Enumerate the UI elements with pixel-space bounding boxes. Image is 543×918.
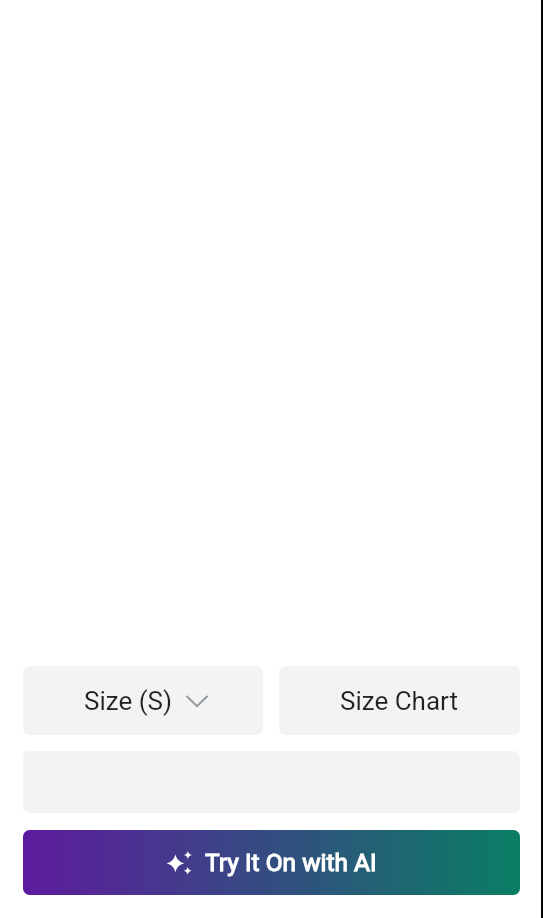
button[interactable]: Try It On with AI (23, 830, 520, 895)
button[interactable]: Size (S) (23, 666, 263, 735)
button[interactable]: Size Chart (279, 666, 520, 735)
staticText: Size Chart (340, 686, 459, 716)
staticText: Size (S) (84, 686, 173, 716)
staticText: Try It On with AI (205, 848, 377, 877)
